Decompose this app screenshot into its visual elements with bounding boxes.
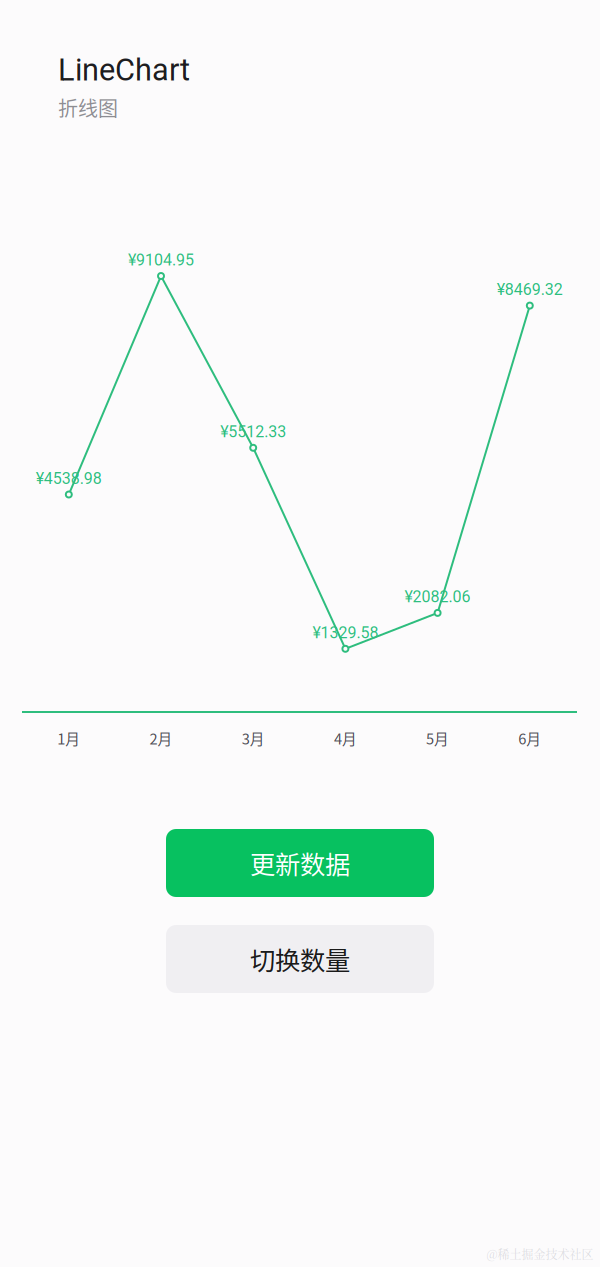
staticText: 切换数量 xyxy=(250,941,350,977)
staticText: @稀土掘金技术社区 xyxy=(486,1245,593,1263)
staticText: 3月 xyxy=(242,727,265,749)
staticText: 更新数据 xyxy=(250,845,350,881)
staticText: 5月 xyxy=(426,727,449,749)
staticText: ¥8469.32 xyxy=(497,280,563,299)
staticText: 6月 xyxy=(518,727,541,749)
button[interactable]: 切换数量 xyxy=(166,925,434,993)
button[interactable]: 更新数据 xyxy=(166,829,434,897)
staticText: 4月 xyxy=(334,727,357,749)
staticText: ¥4538.98 xyxy=(36,469,102,488)
staticText: LineChart xyxy=(58,52,190,88)
staticText: ¥2082.06 xyxy=(405,587,471,606)
staticText: 折线图 xyxy=(58,93,118,122)
staticText: ¥5512.33 xyxy=(220,422,286,441)
staticText: 1月 xyxy=(57,727,80,749)
staticText: ¥1329.58 xyxy=(312,623,378,642)
staticText: ¥9104.95 xyxy=(128,251,194,269)
staticText: 2月 xyxy=(149,727,172,749)
